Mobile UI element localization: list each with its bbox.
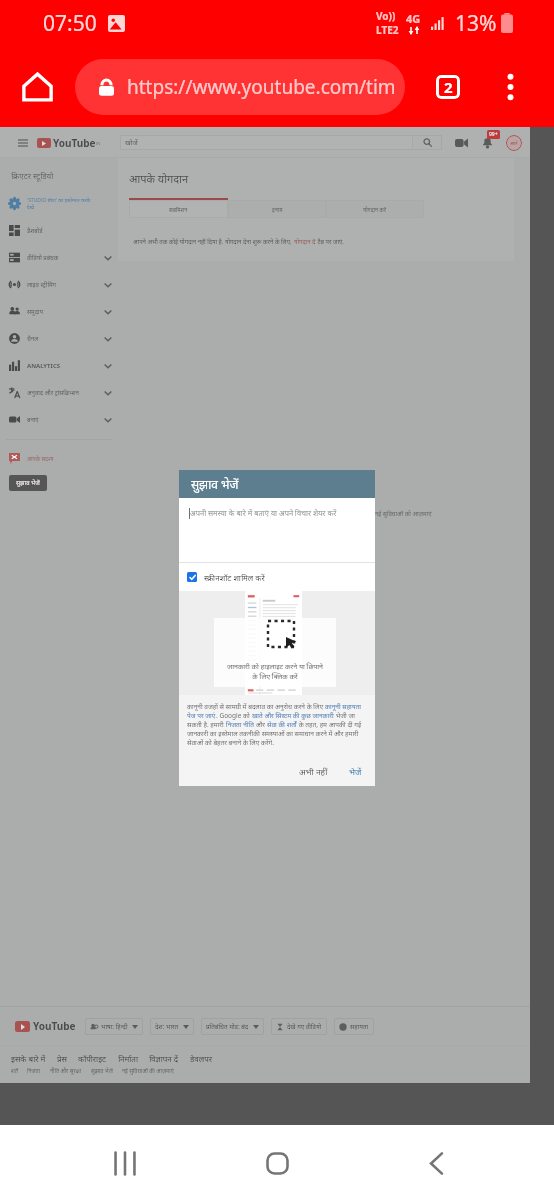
button[interactable]: Recent apps: [97, 1135, 153, 1191]
staticText: और: [254, 720, 267, 729]
button[interactable]: Tabs: [430, 69, 466, 105]
staticText: चैनल: [27, 335, 39, 343]
button[interactable]: लाइव स्ट्रीमिंग: [0, 271, 118, 298]
button[interactable]: शर्तें: [11, 1067, 27, 1074]
button[interactable]: अपनी समस्या के बारे में बताएं या अपने वि…: [179, 498, 375, 562]
button[interactable]: खाते और सिस्टम की कुछ जानकारी: [252, 711, 334, 720]
button[interactable]: Home: [249, 1135, 305, 1191]
staticText: अभी नहीं: [299, 766, 328, 778]
button[interactable]: आपके सदस्य: [0, 447, 118, 469]
staticText: सुझाव भेजें: [191, 476, 239, 492]
staticText: आपके योगदान: [129, 171, 189, 186]
staticText: 4G: [406, 11, 421, 26]
staticText: क्रिएटर स्टूडियो: [11, 170, 54, 181]
button[interactable]: प्रतिबंधित मोड: बंद: [201, 1018, 264, 1035]
button[interactable]: इसके बारे में: [11, 1053, 57, 1064]
staticText: अपनी समस्या के बारे में बताएं या अपने वि…: [190, 508, 337, 518]
button[interactable]: भेजें: [343, 761, 368, 783]
button[interactable]: सबमिशन: [129, 198, 228, 218]
button[interactable]: Back: [408, 1135, 464, 1191]
button[interactable]: कॉपीराइट: [78, 1053, 118, 1064]
button[interactable]: YouTube: [15, 1019, 76, 1033]
button[interactable]: https://www.youtube.com/tim: [75, 59, 405, 115]
button[interactable]: Account: [506, 135, 522, 151]
staticText: 13%: [455, 9, 497, 38]
staticText: टैब पर जाएं.: [316, 238, 344, 246]
button[interactable]: अभी नहीं: [293, 761, 334, 783]
staticText: सुझाव भेजें: [16, 479, 40, 487]
button[interactable]: पेज पर जाएं: [187, 711, 216, 720]
button[interactable]: सहायता: [334, 1018, 374, 1035]
staticText: बनाएं: [27, 416, 39, 424]
button[interactable]: नई सुविधाओं को आज़माएं: [375, 510, 432, 518]
staticText: स्क्रीनशॉट शामिल करें: [204, 572, 265, 583]
staticText: आपने अभी तक कोई योगदान नहीं दिया है. योग…: [133, 238, 294, 246]
button[interactable]: नई सुविधाओं की आज़माएं: [122, 1067, 183, 1074]
staticText: सबमिशन: [169, 206, 188, 213]
staticText: LTE2: [376, 23, 399, 37]
button[interactable]: योगदान करें: [326, 198, 424, 218]
button[interactable]: सुझाव भेजें: [91, 1067, 122, 1074]
staticText: अपने: [510, 141, 518, 146]
button[interactable]: 'STUDIO बीटा' का इस्तेमाल करके देखें: [0, 190, 118, 217]
staticText: भेजी जा: [334, 711, 355, 720]
button[interactable]: Notifications: [482, 136, 495, 149]
staticText: सेवाओं को बेहतर बनाने के लिए करेंगे.: [187, 738, 275, 747]
button[interactable]: Edit screenshot: [179, 591, 375, 695]
staticText: YouTube: [53, 136, 96, 150]
button[interactable]: स्क्रीनशॉट शामिल करें: [179, 563, 375, 591]
button[interactable]: इनाम: [228, 198, 326, 218]
staticText: समुदाय: [27, 308, 43, 316]
staticText: IN: [96, 141, 101, 146]
staticText: https://www.youtube.com/tim: [127, 74, 396, 100]
staticText: कानूनी वजहों से सामग्री में बदलाव का अनु…: [187, 702, 325, 711]
button[interactable]: निजता: [27, 1067, 50, 1074]
staticText: वीडियो प्रबंधक: [27, 254, 59, 262]
button[interactable]: निजता नीति: [226, 720, 254, 729]
button[interactable]: देश: भारत: [150, 1018, 194, 1035]
staticText: सकती है. हमारी: [187, 720, 226, 729]
button[interactable]: कानूनी सहायता: [325, 702, 361, 711]
button[interactable]: डैशबोर्ड: [0, 217, 118, 244]
staticText: जानकारी को हाइलाइट करने या छिपाने: [227, 662, 323, 672]
button[interactable]: देखे गए वीडियो: [271, 1018, 327, 1035]
staticText: 'STUDIO बीटा' का इस्तेमाल करके देखें: [27, 197, 91, 211]
staticText: सहायता: [350, 1022, 369, 1031]
button[interactable]: सेवा की शर्तों: [267, 720, 297, 729]
button[interactable]: डेवलपर: [190, 1053, 223, 1064]
staticText: देश: भारत: [155, 1022, 179, 1031]
button[interactable]: More options: [492, 69, 528, 105]
button[interactable]: नीति और सुरक्षा: [50, 1067, 91, 1074]
button[interactable]: चैनल: [0, 325, 118, 352]
button[interactable]: बनाएं: [0, 406, 118, 433]
staticText: 99+: [489, 131, 498, 138]
button[interactable]: सुझाव भेजें: [9, 475, 47, 491]
button[interactable]: Menu: [18, 139, 28, 147]
staticText: . Google को: [216, 711, 252, 720]
button[interactable]: ANALYTICS: [0, 352, 118, 379]
button[interactable]: Create video: [455, 138, 468, 148]
button[interactable]: प्रेस: [57, 1053, 78, 1064]
staticText: के तहत, हम आपकी दी गई: [297, 720, 362, 729]
button[interactable]: वीडियो प्रबंधक: [0, 244, 118, 271]
button[interactable]: निर्माता: [118, 1053, 149, 1064]
button[interactable]: अनुवाद और ट्रांसक्रिप्शन: [0, 379, 118, 406]
staticText: खोजें: [125, 138, 138, 148]
staticText: ANALYTICS: [27, 362, 61, 370]
staticText: योगदान करें: [363, 206, 387, 213]
button[interactable]: Home: [13, 63, 61, 111]
button[interactable]: समुदाय: [0, 298, 118, 325]
staticText: 07:50: [43, 9, 97, 38]
staticText: के लिए क्लिक करें: [252, 672, 298, 682]
button[interactable]: भाषा: हिन्दी: [85, 1018, 143, 1035]
staticText: इनाम: [272, 206, 283, 213]
button[interactable]: योगदान दें: [294, 238, 316, 246]
staticText: भेजें: [349, 766, 362, 778]
button[interactable]: YouTube: [37, 136, 101, 150]
staticText: लाइव स्ट्रीमिंग: [27, 281, 56, 289]
staticText: 2: [444, 77, 453, 97]
button[interactable]: खोजें: [120, 135, 442, 150]
button[interactable]: विज्ञापन दें: [149, 1053, 190, 1064]
staticText: डैशबोर्ड: [27, 227, 43, 235]
staticText: अनुवाद और ट्रांसक्रिप्शन: [27, 389, 79, 397]
